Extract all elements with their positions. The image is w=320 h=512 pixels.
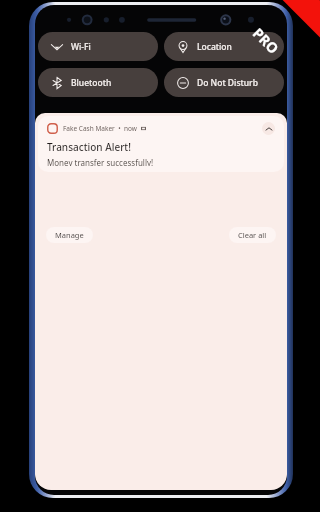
staticText: Do Not Disturb [197, 77, 258, 89]
staticText: Manage [55, 230, 84, 240]
button[interactable]: Manage [46, 227, 93, 243]
staticText: Location [197, 41, 232, 53]
staticText: Wi-Fi [71, 41, 91, 53]
button[interactable]: Fake Cash Maker • now [38, 116, 284, 172]
staticText: Money transfer successfully! [47, 157, 154, 166]
staticText: Clear all [238, 230, 267, 240]
button[interactable]: Collapse notification [262, 122, 275, 135]
staticText: PRO [249, 24, 283, 58]
staticText: Bluetooth [71, 77, 112, 89]
staticText: Fake Cash Maker • now [63, 124, 137, 133]
button[interactable]: Do Not Disturb [164, 68, 284, 97]
button[interactable]: Bluetooth [38, 68, 158, 97]
button[interactable]: Wi-Fi [38, 32, 158, 61]
button[interactable]: Clear all [229, 227, 276, 243]
staticText: Transaction Alert! [47, 140, 131, 154]
button[interactable]: Location [164, 32, 284, 61]
